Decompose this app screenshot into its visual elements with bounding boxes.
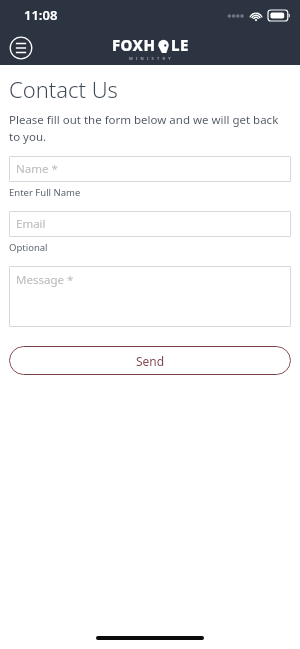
staticText: Optional: [9, 241, 48, 254]
staticText: FOXH: [112, 35, 156, 55]
staticText: Enter Full Name: [9, 186, 81, 199]
staticText: M I N I S T R Y: [129, 56, 172, 61]
button[interactable]: Message *: [9, 266, 291, 327]
staticText: Send: [136, 353, 165, 369]
button[interactable]: Send: [9, 346, 291, 375]
staticText: LE: [171, 35, 189, 55]
button[interactable]: Name *: [9, 156, 291, 182]
staticText: Email: [16, 216, 46, 232]
staticText: Message *: [16, 272, 74, 288]
staticText: Please fill out the form below and we wi…: [9, 112, 291, 144]
button[interactable]: Open navigation menu: [9, 36, 33, 60]
button[interactable]: Email: [9, 211, 291, 237]
staticText: 11:08: [24, 6, 58, 24]
staticText: Contact Us: [9, 74, 118, 104]
staticText: Name *: [16, 161, 58, 177]
